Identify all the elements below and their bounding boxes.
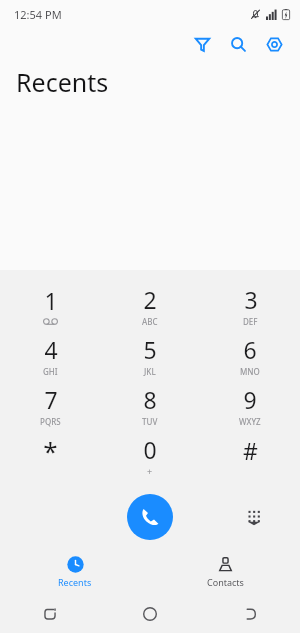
button[interactable]: Call: [127, 494, 173, 540]
staticText: 7: [44, 384, 58, 415]
staticText: JKL: [144, 366, 156, 377]
staticText: WXYZ: [239, 416, 261, 427]
button[interactable]: 1: [0, 280, 100, 330]
button[interactable]: Recents: [0, 549, 150, 595]
staticText: 4: [44, 334, 58, 365]
staticText: Recents: [16, 65, 109, 99]
staticText: GHI: [43, 366, 58, 377]
button[interactable]: #: [200, 430, 300, 480]
button[interactable]: 0: [100, 430, 200, 480]
button[interactable]: Contacts: [150, 549, 300, 595]
staticText: 1: [44, 285, 58, 316]
button[interactable]: Home: [100, 595, 200, 633]
staticText: DEF: [243, 316, 258, 327]
staticText: PQRS: [40, 416, 61, 427]
button[interactable]: Back: [200, 595, 300, 633]
button[interactable]: 7: [0, 380, 100, 430]
button[interactable]: *: [0, 430, 100, 480]
staticText: 6: [243, 334, 257, 365]
staticText: +: [147, 465, 153, 477]
staticText: Recents: [58, 576, 92, 588]
button[interactable]: Settings: [256, 28, 292, 60]
staticText: ABC: [142, 316, 158, 327]
staticText: 12:54 PM: [14, 7, 62, 22]
button[interactable]: Recent apps: [0, 595, 100, 633]
staticText: MNO: [240, 366, 260, 377]
button[interactable]: Search: [220, 28, 256, 60]
button[interactable]: Filter: [184, 28, 220, 60]
button[interactable]: 3: [200, 280, 300, 330]
staticText: Contacts: [207, 576, 244, 588]
staticText: 3: [244, 284, 258, 315]
staticText: #: [243, 435, 258, 466]
staticText: 0: [143, 434, 157, 465]
button[interactable]: 9: [200, 380, 300, 430]
staticText: TUV: [142, 416, 158, 427]
staticText: 8: [143, 384, 157, 415]
staticText: 2: [143, 284, 157, 315]
staticText: 9: [243, 384, 257, 415]
button[interactable]: 2: [100, 280, 200, 330]
button[interactable]: 6: [200, 330, 300, 380]
staticText: 5: [143, 334, 157, 365]
staticText: *: [43, 433, 58, 468]
button[interactable]: 5: [100, 330, 200, 380]
button[interactable]: Hide keypad: [235, 498, 273, 536]
button[interactable]: 8: [100, 380, 200, 430]
button[interactable]: 4: [0, 330, 100, 380]
